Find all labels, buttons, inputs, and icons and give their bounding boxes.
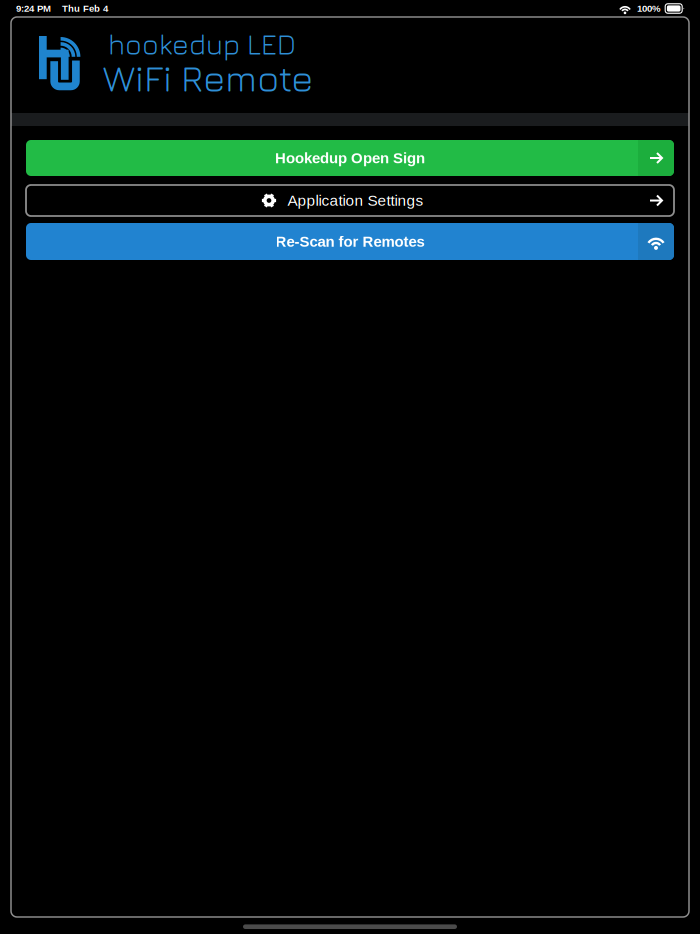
staticText: Hookedup Open Sign [275,150,425,166]
staticText: WiFi Remote [103,55,313,100]
staticText: Re-Scan for Remotes [275,233,424,250]
staticText: Application Settings [287,192,423,209]
staticText: 9:24 PM [16,3,51,14]
button[interactable]: Re-Scan for Remotes [11,223,689,260]
staticText: Thu Feb 4 [62,3,108,14]
button[interactable]: Hookedup Open Sign [11,140,689,176]
staticText: hookedup LED [108,27,296,60]
staticText: 100% [637,3,661,14]
button[interactable]: Application Settings [11,185,689,216]
